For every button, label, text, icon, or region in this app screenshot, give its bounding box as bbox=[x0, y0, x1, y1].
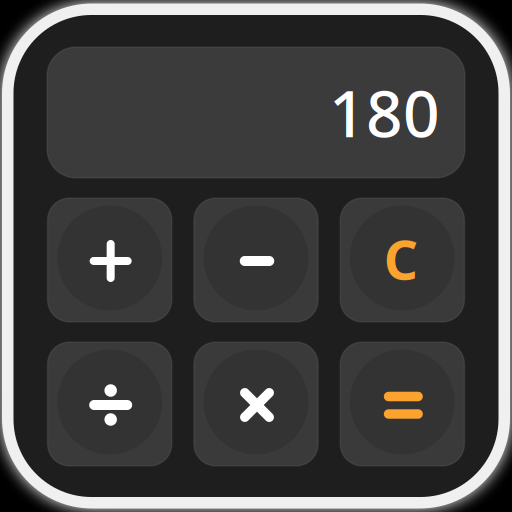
button[interactable]: Multiply bbox=[194, 342, 318, 466]
button[interactable]: Add bbox=[47, 198, 172, 322]
staticText: 180 bbox=[329, 70, 440, 155]
button[interactable]: Equals bbox=[340, 342, 464, 466]
button[interactable]: Subtract bbox=[194, 198, 318, 322]
staticText: C bbox=[384, 224, 418, 294]
button[interactable]: Clear bbox=[340, 198, 464, 322]
button[interactable]: Divide bbox=[47, 342, 172, 466]
